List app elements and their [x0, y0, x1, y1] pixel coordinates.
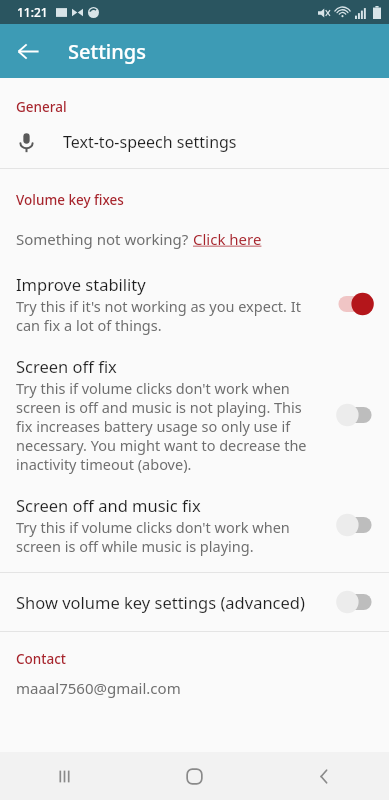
- staticText: 11:21: [17, 4, 48, 20]
- staticText: General: [16, 98, 67, 116]
- staticText: maaal7560@gmail.com: [16, 678, 181, 698]
- staticText: Try this if volume clicks don't work whe…: [16, 517, 320, 556]
- button[interactable]: Improve stability: [0, 253, 389, 339]
- staticText: Show volume key settings (advanced): [16, 591, 332, 613]
- staticText: Improve stability: [16, 273, 146, 295]
- staticText: Try this if volume clicks don't work whe…: [16, 378, 320, 474]
- button[interactable]: Screen off fix: [0, 339, 389, 478]
- staticText: Settings: [68, 38, 146, 65]
- staticText: Screen off fix: [16, 355, 117, 377]
- staticText: Try this if it's not working as you expe…: [16, 296, 320, 335]
- button[interactable]: Recent apps: [0, 752, 129, 800]
- staticText: Click here: [193, 229, 262, 249]
- button[interactable]: Back: [7, 30, 49, 72]
- staticText: Volume key fixes: [16, 191, 124, 209]
- button[interactable]: Screen off and music fix: [0, 478, 389, 560]
- button[interactable]: Back: [259, 752, 389, 800]
- button[interactable]: Something not working?: [0, 209, 389, 253]
- staticText: Contact: [16, 650, 66, 668]
- staticText: Text-to-speech settings: [63, 131, 237, 153]
- button[interactable]: Home: [129, 752, 259, 800]
- staticText: Screen off and music fix: [16, 494, 201, 516]
- button[interactable]: Show volume key settings (advanced): [0, 573, 389, 631]
- button[interactable]: Text-to-speech settings: [0, 116, 389, 168]
- staticText: Something not working?: [16, 229, 193, 249]
